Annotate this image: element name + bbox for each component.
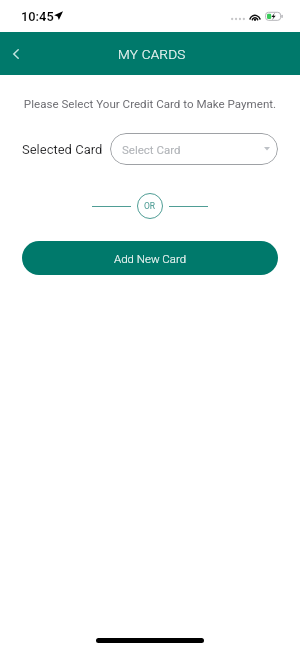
- staticText: Selected Card: [22, 142, 103, 157]
- staticText: Add New Card: [114, 252, 187, 265]
- staticText: OR: [144, 201, 156, 211]
- staticText: MY CARDS: [118, 46, 186, 62]
- staticText: 10:45: [21, 9, 54, 24]
- staticText: Please Select Your Credit Card to Make P…: [0, 97, 300, 111]
- button[interactable]: Select Card: [110, 133, 278, 165]
- button[interactable]: Back: [0, 32, 36, 75]
- button[interactable]: Add New Card: [22, 241, 278, 275]
- staticText: Select Card: [122, 143, 181, 156]
